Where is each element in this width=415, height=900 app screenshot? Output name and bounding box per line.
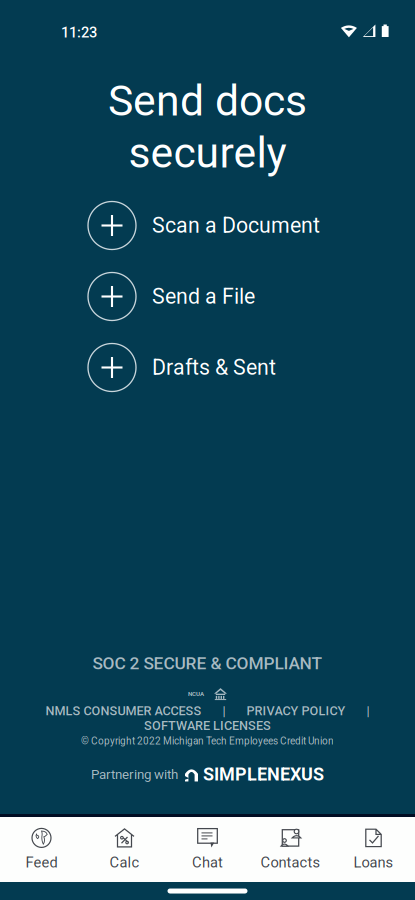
staticText: NCUA (188, 690, 204, 698)
button[interactable]: Send a File (0, 261, 415, 332)
staticText: Partnering with (91, 767, 178, 782)
staticText: Chat (192, 854, 223, 871)
staticText: NMLS CONSUMER ACCESS (45, 703, 201, 718)
button[interactable]: SOFTWARE LICENSES (144, 718, 271, 733)
button[interactable]: Loans (332, 817, 415, 882)
button[interactable]: Chat (166, 817, 249, 882)
staticText: Drafts & Sent (152, 355, 276, 380)
staticText: Scan a Document (152, 213, 320, 238)
staticText: SOFTWARE LICENSES (144, 718, 271, 733)
staticText: © Copyright 2022 Michigan Tech Employees… (81, 735, 334, 747)
button[interactable]: NMLS CONSUMER ACCESS (45, 703, 201, 718)
staticText: | (366, 703, 369, 718)
staticText: SIMPLENEXUS (203, 764, 324, 785)
staticText: Send a File (152, 284, 255, 309)
staticText: securely (128, 128, 286, 178)
staticText: Feed (25, 854, 57, 871)
staticText: Loans (353, 854, 393, 871)
staticText: | (222, 703, 225, 718)
staticText: Calc (109, 854, 139, 871)
staticText: SOC 2 SECURE & COMPLIANT (92, 653, 322, 673)
staticText: Send docs (108, 76, 307, 126)
button[interactable]: PRIVACY POLICY (246, 703, 345, 718)
staticText: Contacts (260, 854, 320, 871)
staticText: PRIVACY POLICY (246, 703, 345, 718)
staticText: 11:23 (61, 24, 97, 41)
button[interactable]: Scan a Document (0, 190, 415, 261)
button[interactable]: Calc (83, 817, 166, 882)
button[interactable]: Contacts (249, 817, 332, 882)
button[interactable]: Drafts & Sent (0, 332, 415, 403)
button[interactable]: Feed (0, 817, 83, 882)
